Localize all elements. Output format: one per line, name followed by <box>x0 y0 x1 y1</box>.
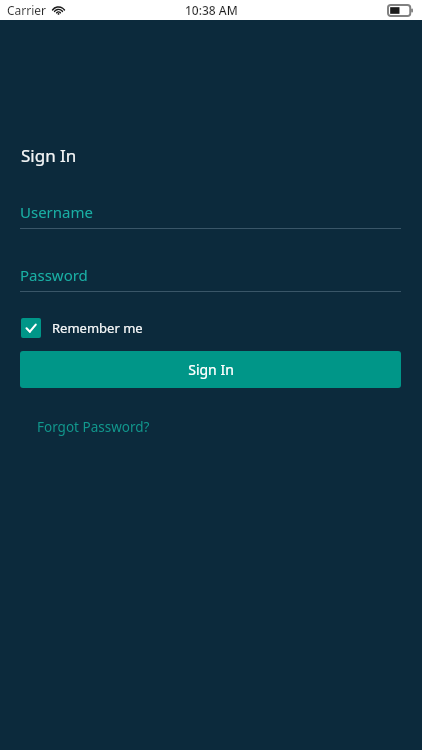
button[interactable]: Forgot Password? <box>37 418 150 436</box>
staticText: Remember me <box>52 319 143 337</box>
staticText: Forgot Password? <box>37 418 150 436</box>
button[interactable]: Sign In <box>20 351 401 388</box>
other: Remember me checkbox <box>21 318 41 338</box>
staticText: 10:38 AM <box>185 2 238 18</box>
button[interactable]: Password <box>20 265 401 292</box>
staticText: Password <box>20 265 88 285</box>
staticText: Sign In <box>188 360 234 379</box>
staticText: Carrier <box>7 2 47 18</box>
staticText: Sign In <box>21 144 77 167</box>
button[interactable]: Username <box>20 202 401 229</box>
button[interactable]: Remember me checkbox <box>21 318 143 338</box>
staticText: Username <box>20 202 93 222</box>
